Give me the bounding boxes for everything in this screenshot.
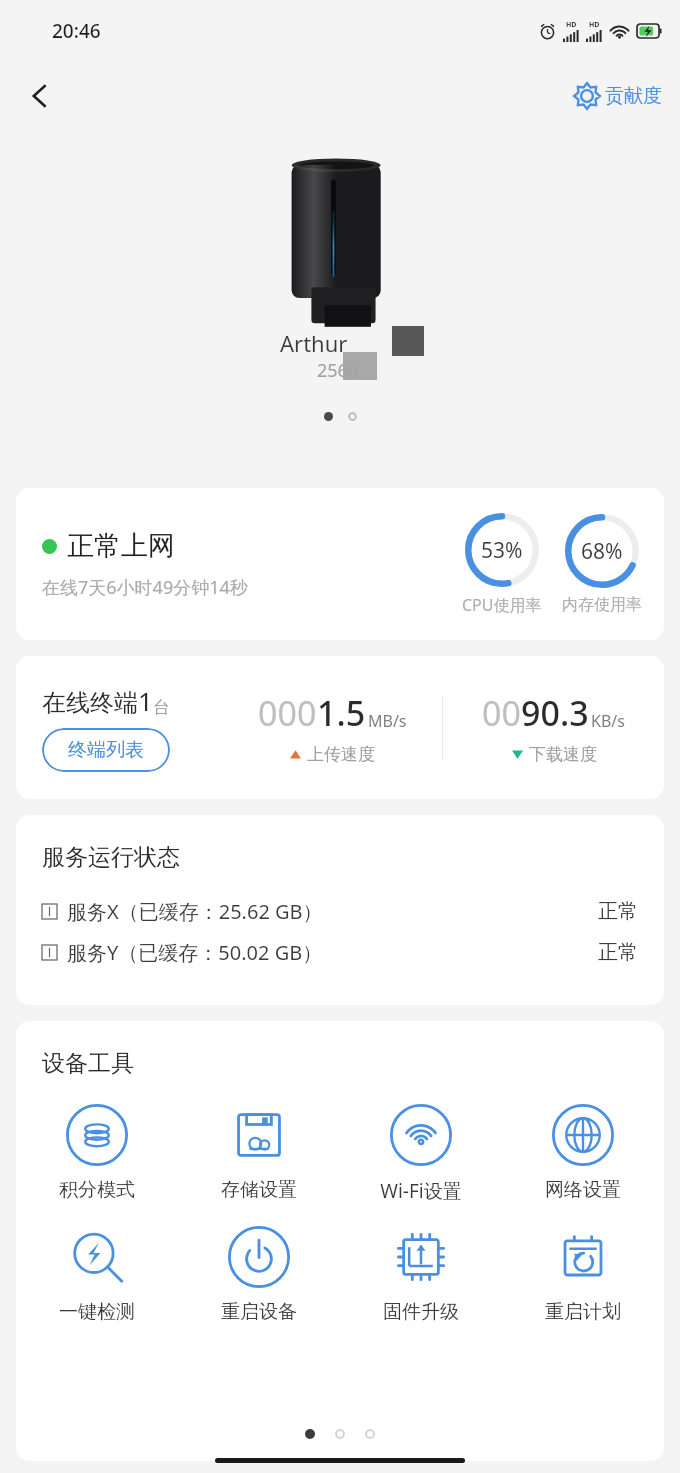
staticText: 贡献度	[605, 84, 662, 108]
button[interactable]: Wi-Fi设置	[340, 1104, 502, 1204]
staticText: 正常	[598, 940, 638, 965]
staticText: 在线终端	[42, 688, 138, 718]
staticText: KB/s	[591, 710, 625, 732]
staticText: 正常上网	[67, 529, 175, 563]
button[interactable]: 积分模式	[16, 1104, 178, 1202]
staticText: 在线7天6小时49分钟14秒	[42, 575, 248, 600]
staticText: 设备工具	[42, 1049, 134, 1078]
staticText: 1.5	[317, 690, 366, 736]
staticText: HD	[566, 20, 577, 30]
staticText: MB/s	[368, 710, 407, 732]
staticText: 存储设置	[221, 1178, 297, 1202]
staticText: 内存使用率	[562, 595, 642, 615]
button[interactable]: 服务X（已缓存：25.62 GB）	[42, 898, 638, 925]
staticText: 68%	[581, 537, 623, 566]
button[interactable]: 重启设备	[178, 1226, 340, 1324]
staticText: 固件升级	[383, 1300, 459, 1324]
button[interactable]: Back	[12, 68, 68, 124]
button[interactable]: 重启计划	[502, 1226, 664, 1324]
button[interactable]: 服务Y（已缓存：50.02 GB）	[42, 939, 638, 966]
staticText: HD	[589, 20, 600, 30]
button[interactable]: 固件升级	[340, 1226, 502, 1324]
staticText: 积分模式	[59, 1178, 135, 1202]
staticText: 网络设置	[545, 1178, 621, 1202]
staticText: CPU使用率	[462, 594, 542, 616]
staticText: 53%	[481, 536, 523, 565]
staticText: 重启设备	[221, 1300, 297, 1324]
staticText: 服务Y（已缓存：50.02 GB）	[67, 939, 323, 966]
staticText: Wi-Fi设置	[380, 1178, 462, 1204]
button[interactable]: 存储设置	[178, 1104, 340, 1202]
staticText: 20:46	[52, 18, 101, 44]
staticText: 服务运行状态	[42, 843, 180, 872]
staticText: 00	[482, 690, 521, 736]
button[interactable]: 终端列表	[42, 728, 170, 772]
staticText: 90.3	[521, 690, 589, 736]
staticText: 000	[258, 690, 317, 736]
staticText: 服务X（已缓存：25.62 GB）	[67, 898, 323, 925]
staticText: 台	[153, 697, 170, 718]
staticText: 2560	[317, 358, 359, 383]
staticText: 下载速度	[529, 744, 597, 765]
staticText: 1	[138, 683, 153, 718]
button[interactable]: 正常上网	[16, 488, 664, 640]
button[interactable]: 贡献度	[573, 82, 662, 110]
button[interactable]: 一键检测	[16, 1226, 178, 1324]
staticText: 重启计划	[545, 1300, 621, 1324]
staticText: 终端列表	[68, 738, 144, 762]
staticText: 一键检测	[59, 1300, 135, 1324]
staticText: 正常	[598, 899, 638, 924]
staticText: 上传速度	[307, 744, 375, 765]
button[interactable]: 网络设置	[502, 1104, 664, 1202]
staticText: Arthur	[280, 328, 348, 358]
